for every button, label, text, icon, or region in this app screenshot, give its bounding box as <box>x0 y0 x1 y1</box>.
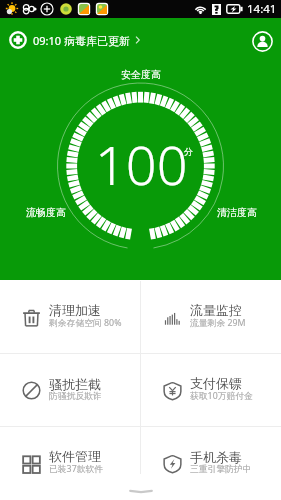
button[interactable]: 流量监控 <box>141 281 281 353</box>
staticText: 防骚扰反欺诈 <box>49 391 102 402</box>
button[interactable]: 09:10 病毒库已更新 <box>9 27 140 53</box>
staticText: 手机杀毒 <box>190 449 242 465</box>
button[interactable]: Collapse <box>113 491 169 492</box>
button[interactable]: 手机杀毒 <box>141 427 281 499</box>
button[interactable]: 软件管理 <box>0 427 140 499</box>
button[interactable]: 支付保镖 <box>141 354 281 426</box>
staticText: 三重引擎防护中 <box>190 464 252 475</box>
staticText: 软件管理 <box>49 448 101 464</box>
staticText: 09:10 病毒库已更新 <box>33 33 130 48</box>
staticText: 安全度高 <box>121 68 161 81</box>
button[interactable]: 骚扰拦截 <box>0 354 140 426</box>
staticText: 分 <box>184 146 193 157</box>
staticText: 支付保镖 <box>190 375 242 391</box>
staticText: 骚扰拦截 <box>49 376 101 392</box>
staticText: 流量监控 <box>190 302 242 318</box>
staticText: 14:41 <box>247 1 277 17</box>
staticText: 清理加速 <box>49 302 101 318</box>
staticText: 100 <box>95 127 188 201</box>
staticText: 流量剩余 29M <box>190 317 246 329</box>
staticText: 剩余存储空间 80% <box>49 317 122 329</box>
staticText: 流畅度高 <box>26 206 66 219</box>
staticText: 清洁度高 <box>217 206 257 219</box>
staticText: 已装37款软件 <box>49 463 104 475</box>
button[interactable]: Account <box>247 26 277 56</box>
button[interactable]: 清理加速 <box>0 281 140 353</box>
staticText: 获取10万赔付金 <box>190 390 253 402</box>
